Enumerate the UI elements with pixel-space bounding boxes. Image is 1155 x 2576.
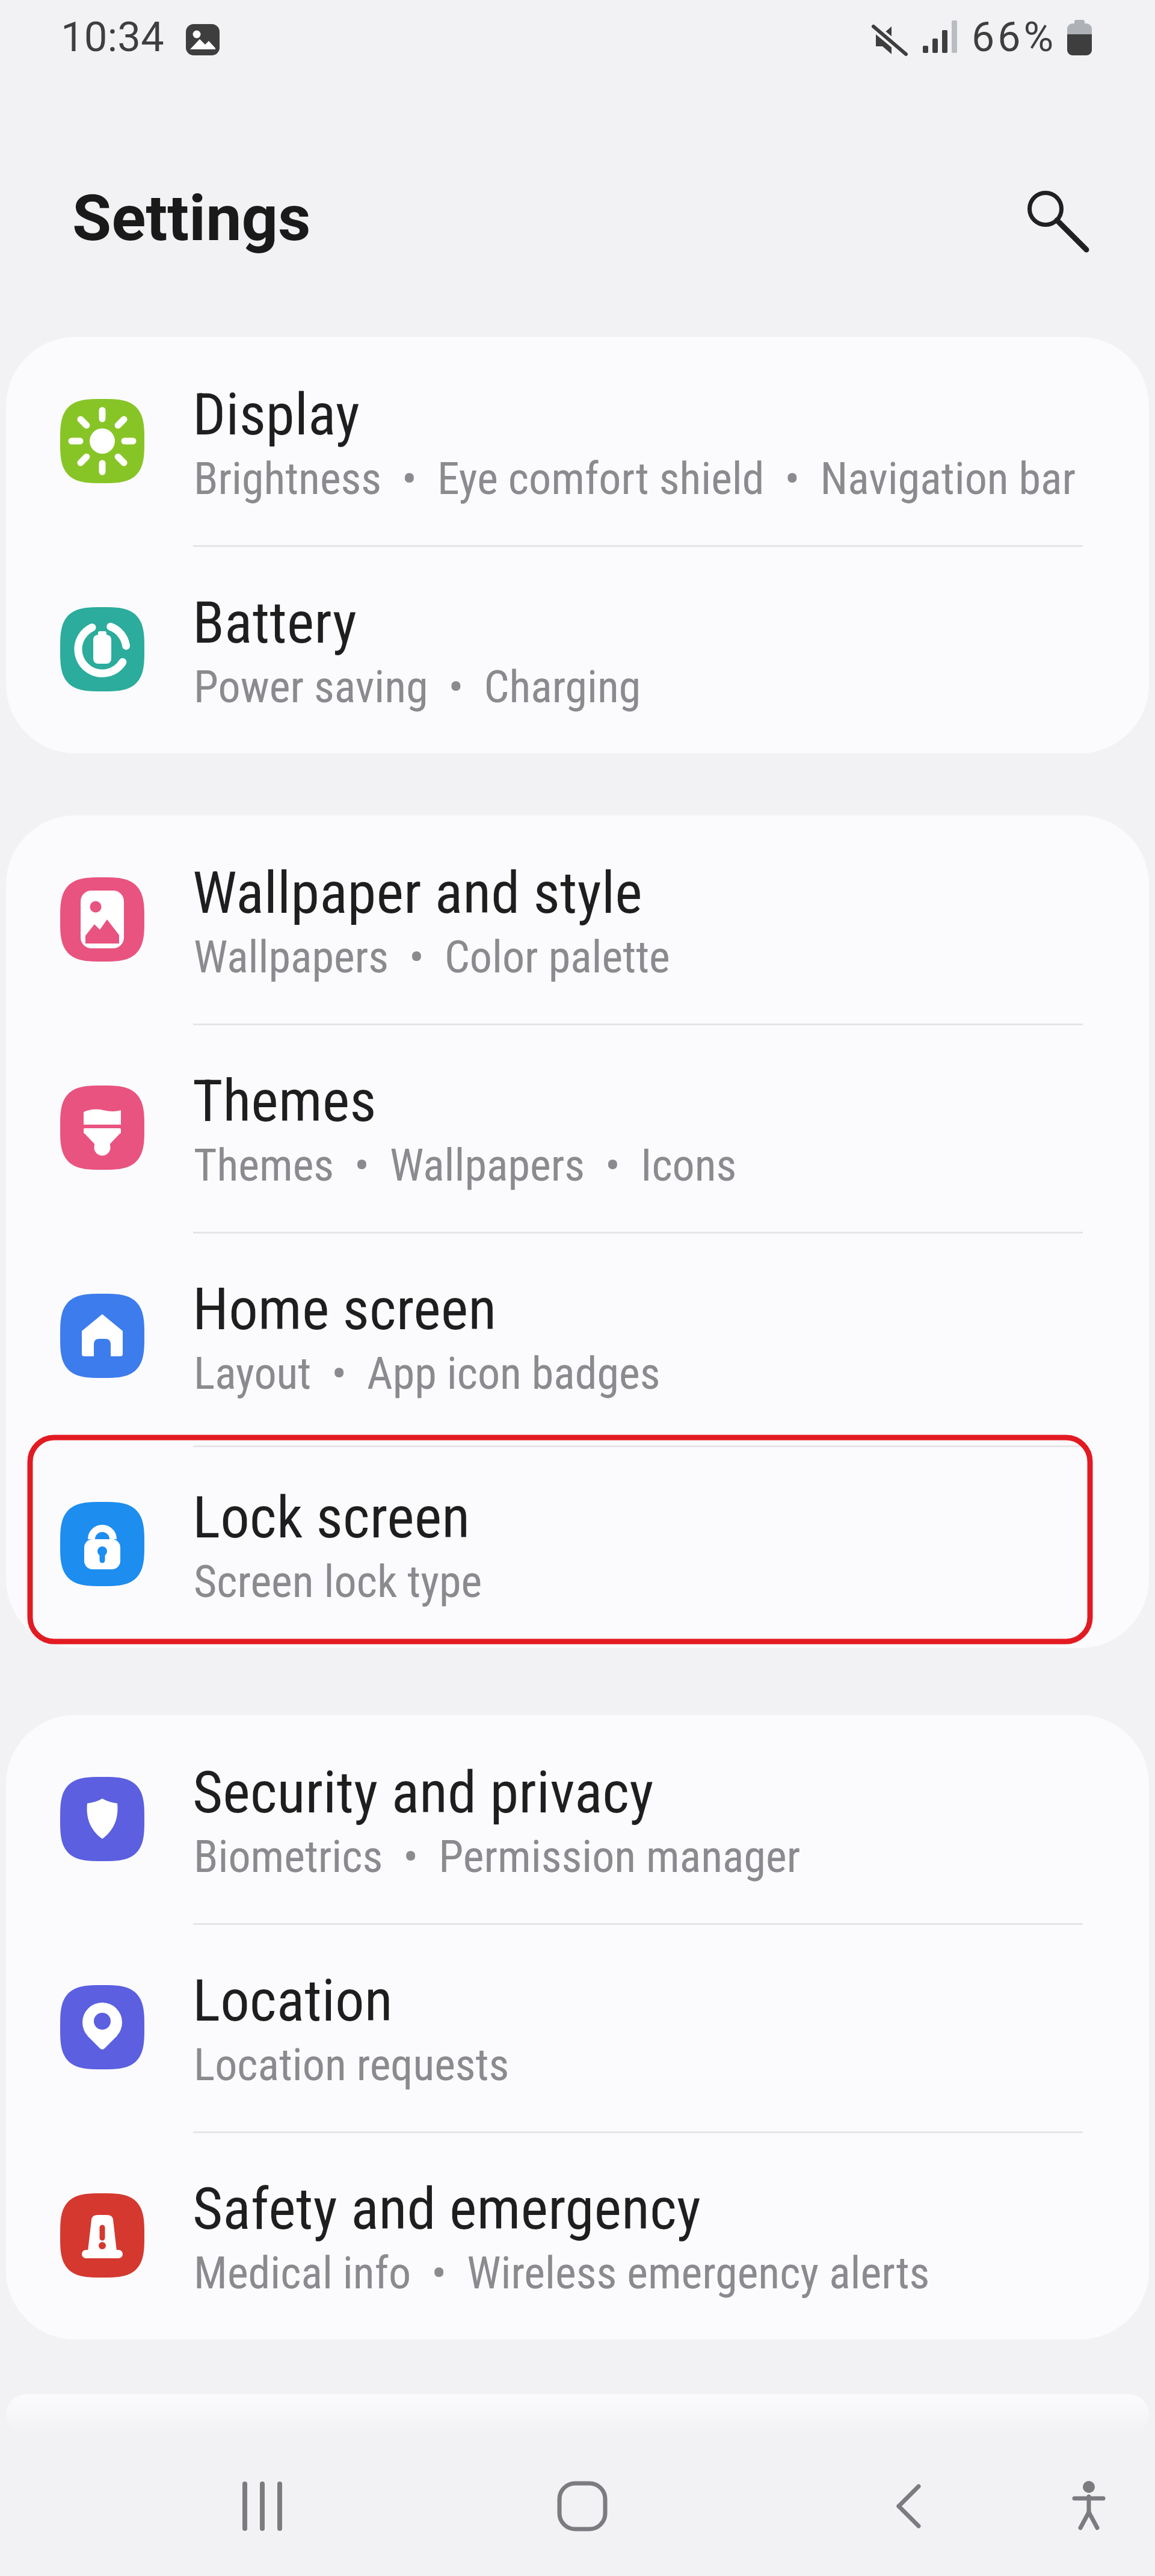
button[interactable]: Home screen [6,1232,1149,1440]
staticText: 66% [972,13,1057,61]
staticText: Lock screen [192,1483,470,1552]
button[interactable]: Security and privacy [6,1715,1149,1923]
button[interactable]: Wallpaper and style [6,815,1149,1024]
button[interactable]: Location [6,1923,1149,2131]
staticText: Wallpaper and style [192,859,642,927]
staticText: Themes • Wallpapers • Icons [194,1139,737,1191]
button[interactable] [229,2474,295,2540]
staticText: Display [192,380,360,449]
button[interactable]: Themes [6,1024,1149,1232]
staticText: Location requests [194,2039,510,2091]
button[interactable]: Display [6,337,1149,545]
staticText: Wallpapers • Color palette [194,931,670,983]
staticText: Screen lock type [194,1555,482,1608]
button[interactable] [999,162,1119,283]
button[interactable] [549,2474,615,2540]
staticText: Security and privacy [192,1758,654,1827]
button[interactable] [1056,2474,1122,2540]
staticText: Settings [72,181,311,256]
button[interactable]: Lock screen [6,1440,1149,1648]
staticText: Location [192,1966,393,2035]
button[interactable] [884,2474,950,2540]
staticText: Brightness • Eye comfort shield • Naviga… [194,452,1076,505]
staticText: Layout • App icon badges [194,1347,661,1400]
staticText: Safety and emergency [192,2175,701,2243]
button[interactable]: Battery [6,545,1149,753]
staticText: Medical info • Wireless emergency alerts [194,2247,930,2299]
staticText: Home screen [192,1275,497,1344]
button[interactable]: Safety and emergency [6,2131,1149,2340]
staticText: 10:34 [61,13,164,61]
staticText: Power saving • Charging [194,661,641,713]
staticText: Battery [192,588,357,657]
staticText: Biometrics • Permission manager [194,1830,801,1883]
staticText: Themes [192,1067,377,1135]
